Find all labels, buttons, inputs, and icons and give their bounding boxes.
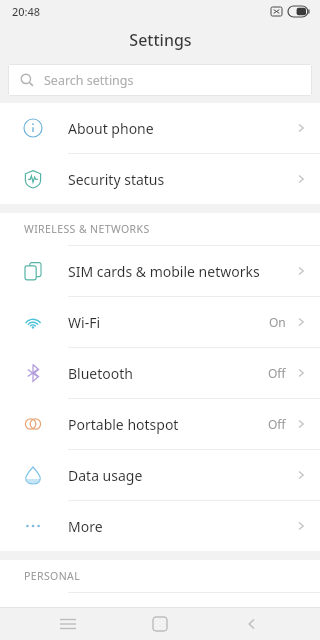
button[interactable]: Portable hotspot: [0, 399, 320, 449]
staticText: Bluetooth: [68, 364, 268, 383]
staticText: SIM cards & mobile networks: [68, 262, 294, 281]
staticText: More: [68, 517, 294, 536]
button[interactable]: About phone: [0, 103, 320, 153]
staticText: On: [269, 314, 286, 330]
staticText: About phone: [68, 119, 294, 138]
staticText: Wi-Fi: [68, 313, 269, 332]
staticText: Off: [268, 416, 286, 432]
staticText: Off: [268, 365, 286, 381]
button[interactable]: Menu: [44, 607, 92, 640]
staticText: Portable hotspot: [68, 415, 268, 434]
button[interactable]: More: [0, 501, 320, 551]
staticText: Security status: [68, 170, 294, 189]
button[interactable]: Security status: [0, 154, 320, 204]
staticText: PERSONAL: [24, 569, 81, 583]
button[interactable]: Search settings: [8, 64, 312, 96]
staticText: Search settings: [44, 72, 134, 89]
staticText: Settings: [129, 29, 192, 51]
button[interactable]: Back: [228, 607, 276, 640]
staticText: WIRELESS & NETWORKS: [24, 222, 150, 236]
button[interactable]: SIM cards & mobile networks: [0, 246, 320, 296]
button[interactable]: Home: [136, 607, 184, 640]
button[interactable]: Bluetooth: [0, 348, 320, 398]
button[interactable]: Wi-Fi: [0, 297, 320, 347]
staticText: Data usage: [68, 466, 294, 485]
staticText: 20:48: [12, 4, 41, 19]
button[interactable]: Data usage: [0, 450, 320, 500]
